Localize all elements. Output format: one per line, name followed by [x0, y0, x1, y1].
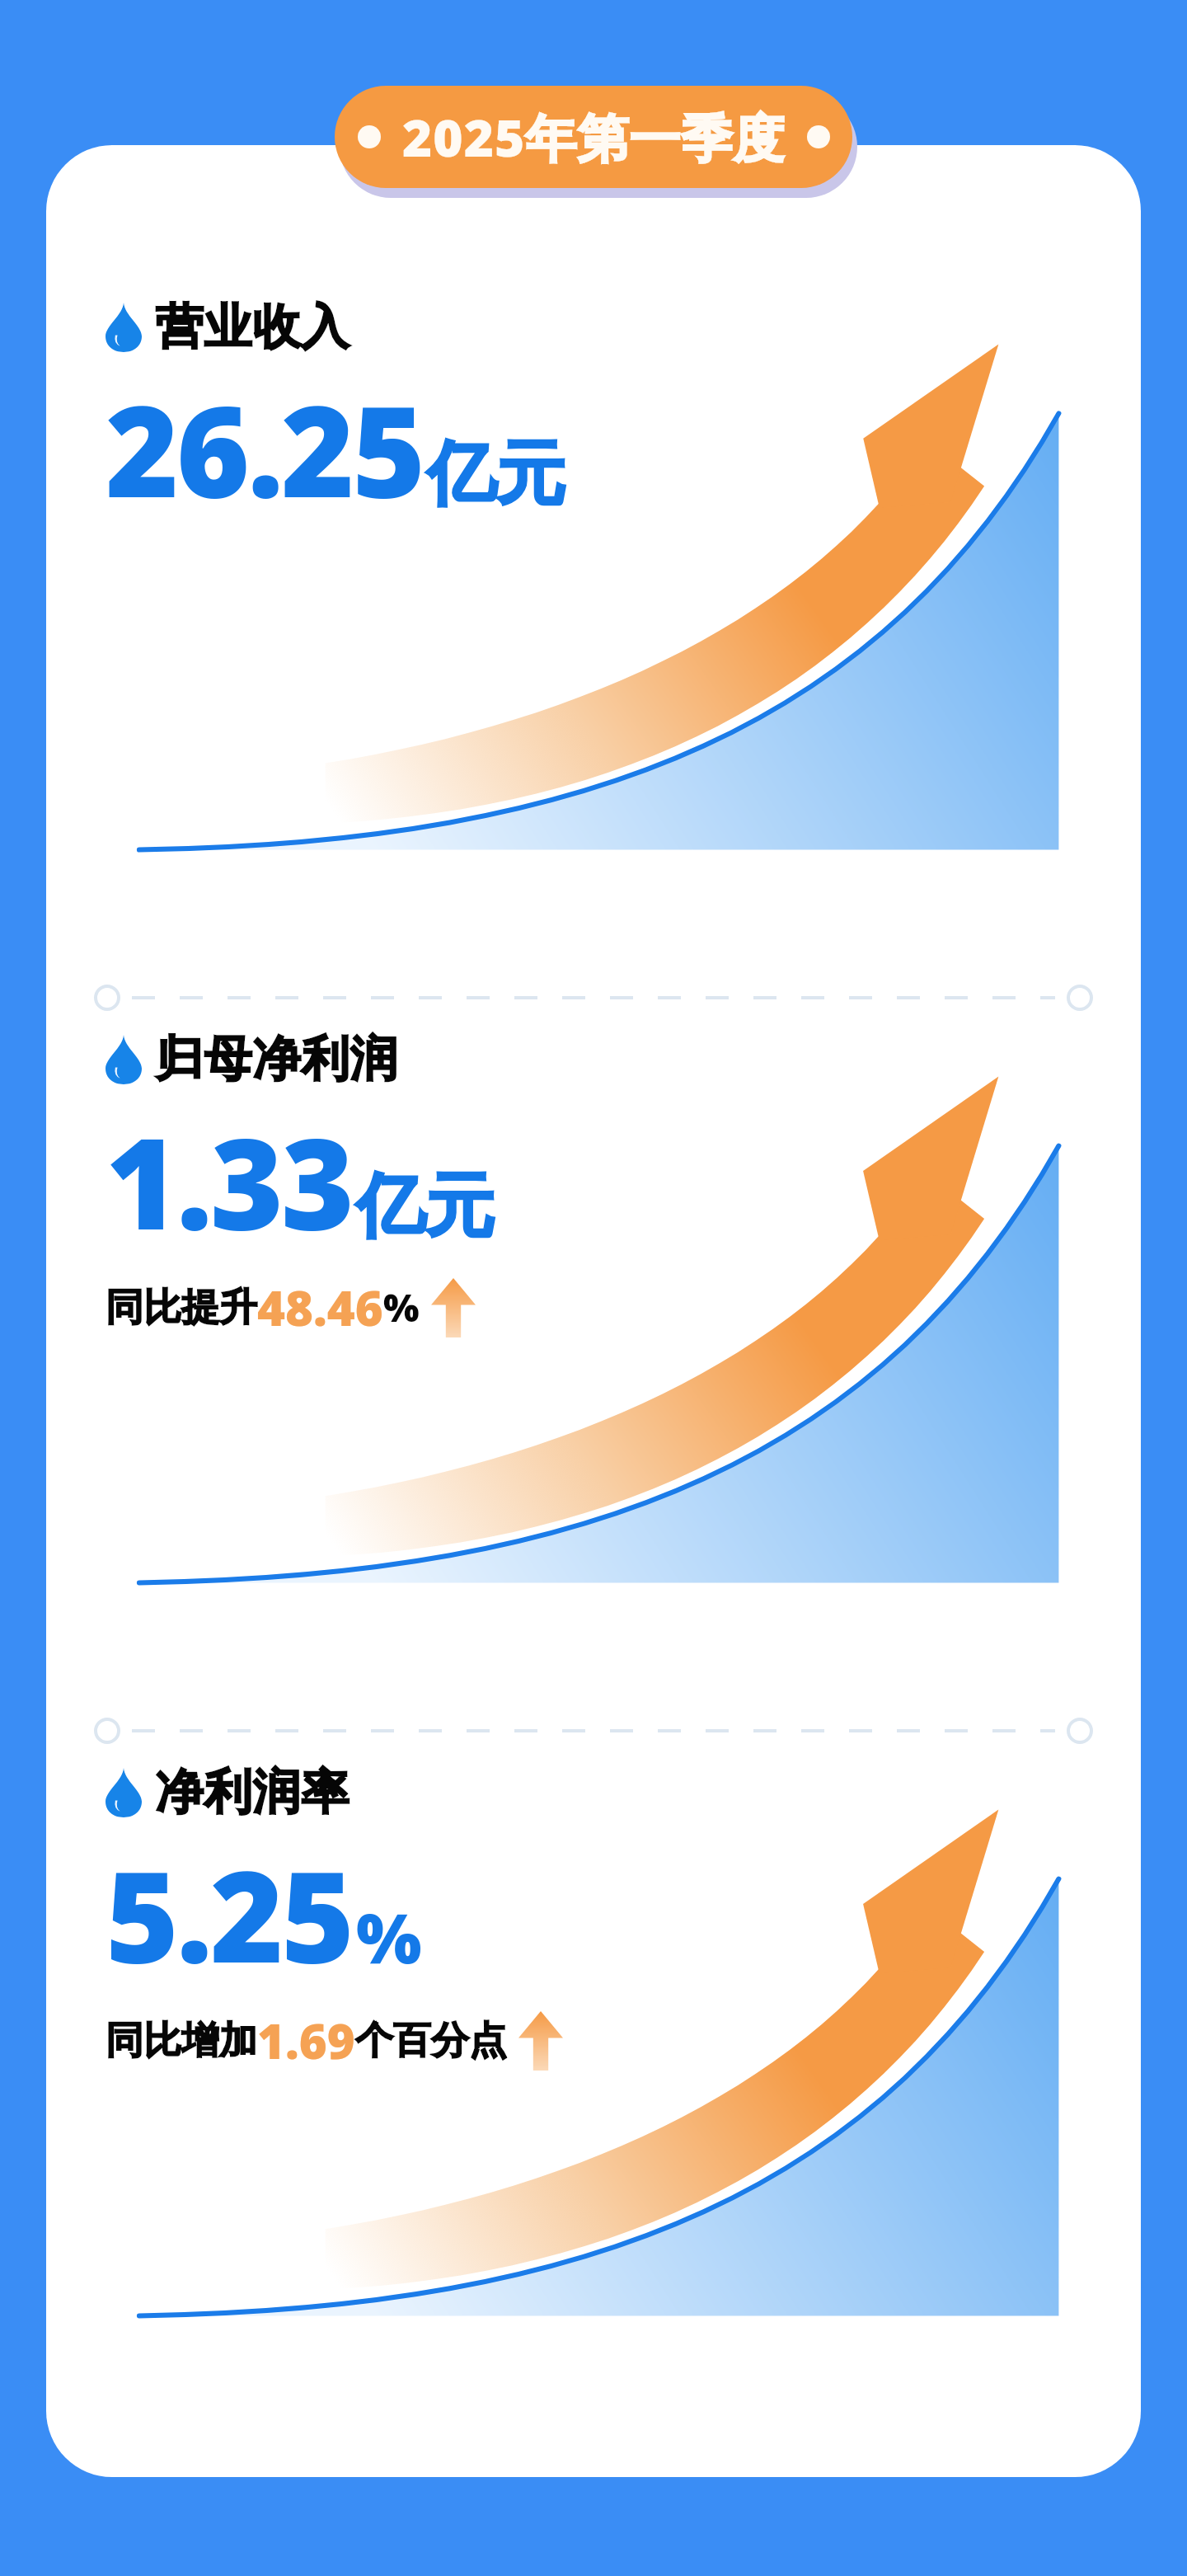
staticText: 48.46	[257, 1275, 383, 1340]
other: 指标	[106, 1768, 142, 1817]
staticText: 2025年第一季度	[402, 102, 786, 172]
staticText: 1.33	[106, 1096, 353, 1267]
staticText: 亿元	[427, 430, 565, 518]
staticText: 26.25	[106, 364, 424, 534]
staticText: 同比增加	[106, 2017, 257, 2065]
staticText: 同比提升	[106, 1284, 257, 1332]
other: 指标	[106, 1035, 142, 1084]
button[interactable]: 指标	[46, 1018, 1141, 1711]
staticText: %	[356, 1889, 422, 1983]
staticText: 个百分点	[355, 2017, 507, 2065]
staticText: 归母净利润	[155, 1029, 398, 1089]
button[interactable]: 指标	[46, 1751, 1141, 2444]
button[interactable]: 指标	[46, 285, 1141, 978]
staticText: 亿元	[356, 1163, 495, 1250]
staticText: 5.25	[106, 1829, 353, 2000]
staticText: %	[383, 1281, 420, 1333]
staticText: 净利润率	[155, 1762, 350, 1822]
other: 指标	[106, 303, 142, 352]
button[interactable]: 2025年第一季度	[335, 86, 852, 188]
staticText: 营业收入	[155, 297, 350, 357]
staticText: 1.69	[257, 2008, 355, 2073]
